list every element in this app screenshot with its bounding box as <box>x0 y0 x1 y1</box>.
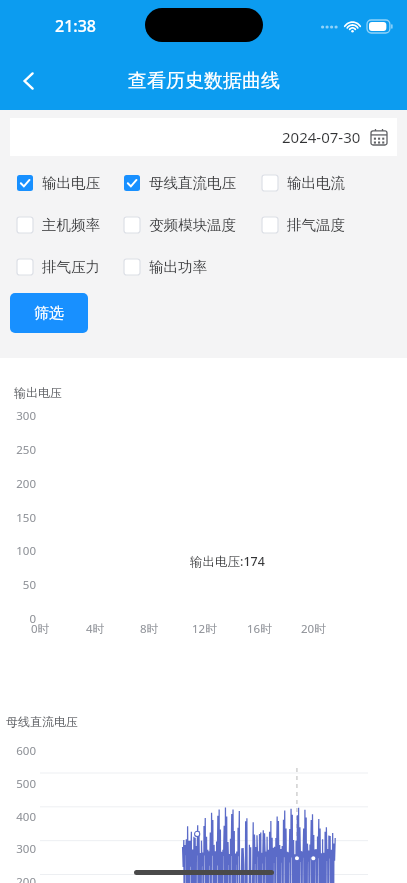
staticText: 600 <box>16 743 36 759</box>
staticText: 21:38 <box>55 15 96 37</box>
staticText: 查看历史数据曲线 <box>128 69 280 93</box>
staticText: 主机频率 <box>42 216 100 234</box>
button[interactable]: 变频模块温度 <box>124 215 236 235</box>
button[interactable]: 筛选 <box>10 293 88 333</box>
button[interactable]: 排气温度 <box>262 215 345 235</box>
staticText: 2024-07-30 <box>282 127 361 147</box>
staticText: 4时 <box>86 621 105 637</box>
staticText: 0 <box>29 611 36 627</box>
button[interactable]: 输出电压 <box>17 173 100 193</box>
staticText: 50 <box>22 577 36 593</box>
staticText: 500 <box>16 776 36 792</box>
staticText: 输出电流 <box>287 174 345 192</box>
button[interactable]: 主机频率 <box>17 215 100 235</box>
staticText: 母线直流电压 <box>149 174 236 192</box>
staticText: 200 <box>16 476 36 492</box>
staticText: 筛选 <box>34 304 64 323</box>
staticText: 400 <box>16 809 36 825</box>
staticText: 输出电压:174 <box>190 553 265 570</box>
button[interactable]: 2024-07-30 <box>10 118 397 156</box>
staticText: 12时 <box>192 621 217 637</box>
button[interactable]: 母线直流电压 <box>124 173 236 193</box>
staticText: 排气压力 <box>42 258 100 276</box>
staticText: 300 <box>16 408 36 424</box>
staticText: 输出电压 <box>14 385 62 400</box>
staticText: 100 <box>16 543 36 559</box>
button[interactable]: Back <box>8 60 50 102</box>
staticText: 排气温度 <box>287 216 345 234</box>
staticText: 母线直流电压 <box>6 714 78 729</box>
staticText: 输出电压 <box>42 174 100 192</box>
staticText: 150 <box>16 510 36 526</box>
staticText: 200 <box>16 874 36 883</box>
staticText: 300 <box>16 841 36 857</box>
staticText: 20时 <box>301 621 326 637</box>
button[interactable]: 排气压力 <box>17 257 100 277</box>
staticText: 250 <box>16 442 36 458</box>
button[interactable]: 输出功率 <box>124 257 207 277</box>
staticText: 变频模块温度 <box>149 216 236 234</box>
staticText: 16时 <box>247 621 272 637</box>
staticText: 输出功率 <box>149 258 207 276</box>
button[interactable]: 输出电流 <box>262 173 345 193</box>
staticText: 8时 <box>140 621 159 637</box>
staticText: 0时 <box>31 621 50 637</box>
